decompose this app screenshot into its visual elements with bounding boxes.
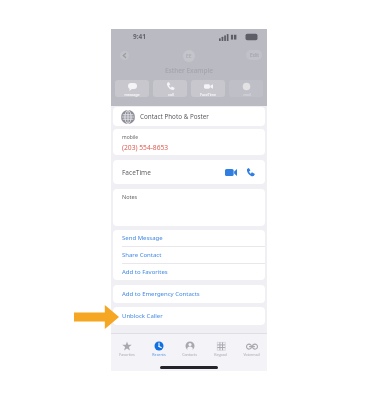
button[interactable]: FaceTime audio — [246, 168, 255, 177]
button[interactable]: message — [115, 80, 149, 97]
staticText: call — [168, 92, 174, 97]
staticText: Edit — [250, 52, 259, 59]
button[interactable]: Share Contact — [113, 247, 265, 263]
button[interactable]: Add to Favorites — [113, 264, 265, 280]
button[interactable]: FaceTime video — [225, 168, 237, 177]
staticText: Add to Favorites — [122, 268, 168, 276]
button[interactable]: Unblock Caller — [113, 307, 265, 325]
button[interactable]: Send Message — [113, 230, 265, 246]
staticText: Contacts — [182, 352, 197, 357]
button[interactable]: Contacts — [174, 336, 205, 362]
button[interactable]: mobile — [113, 129, 265, 155]
staticText: Voicemail — [243, 352, 260, 357]
staticText: 9:41 — [133, 32, 146, 41]
button[interactable]: FaceTime — [191, 80, 225, 97]
staticText: Add to Emergency Contacts — [122, 290, 200, 298]
staticText: Unblock Caller — [122, 312, 163, 320]
staticText: EE — [186, 53, 192, 60]
button[interactable]: Favorites — [111, 336, 143, 362]
staticText: (203) 554-8653 — [122, 143, 169, 152]
staticText: FaceTime — [122, 168, 151, 177]
button[interactable]: Notes — [113, 189, 265, 226]
staticText: Notes — [122, 193, 138, 200]
staticText: Recents — [152, 352, 166, 357]
staticText: message — [124, 92, 140, 97]
button[interactable]: Back — [120, 51, 129, 60]
staticText: Share Contact — [122, 251, 162, 259]
staticText: Keypad — [214, 352, 227, 357]
staticText: mobile — [122, 134, 139, 141]
button[interactable]: call — [153, 80, 187, 97]
staticText: Favorites — [119, 352, 135, 357]
button[interactable]: Recents — [143, 336, 174, 362]
button[interactable]: Contact Photo & Poster — [113, 107, 265, 126]
button[interactable]: mail — [229, 80, 263, 97]
button[interactable]: Voicemail — [236, 336, 267, 362]
button[interactable]: Edit — [246, 50, 262, 60]
button[interactable]: Add to Emergency Contacts — [113, 285, 265, 303]
button[interactable]: Keypad — [205, 336, 236, 362]
staticText: Esther Example — [111, 66, 267, 75]
staticText: FaceTime — [200, 92, 216, 97]
staticText: mail — [243, 92, 251, 97]
staticText: Send Message — [122, 234, 163, 242]
staticText: Contact Photo & Poster — [140, 112, 209, 121]
